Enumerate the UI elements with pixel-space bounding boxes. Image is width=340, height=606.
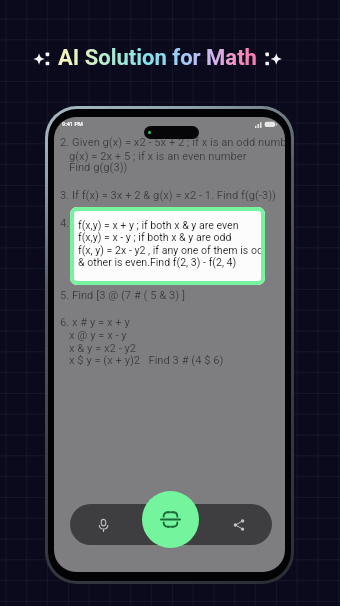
staticText: 9:41 PM <box>62 121 83 127</box>
staticText: f(x, y) = 2x - y2 , if any one of them i… <box>78 244 265 256</box>
staticText: x & y = x2 - y2 <box>69 342 137 355</box>
staticText: 6. x # y = x + y <box>60 316 130 329</box>
staticText: 4. <box>60 217 70 230</box>
staticText: x $ y = (x + y)2 Find 3 # (4 $ 6) <box>69 354 224 367</box>
staticText: f(x,y) = x - y ; if both x & y are odd <box>78 231 232 243</box>
staticText: AI Solution for Math <box>58 45 257 71</box>
staticText: x @ y = x - y <box>69 329 127 342</box>
staticText: f(x,y) = x + y ; if both x & y are even <box>78 219 239 231</box>
staticText: g(x) = 2x + 5 ; if x is an even number <box>69 150 247 163</box>
button[interactable]: Share <box>222 508 256 542</box>
staticText: Find g(g(3)) <box>69 161 128 174</box>
button[interactable]: Voice input <box>86 508 120 542</box>
button[interactable]: Scan problem <box>142 491 199 548</box>
staticText: 5. Find [3 @ (7 # ( 5 & 3) ] <box>60 289 185 302</box>
staticText: 3. If f(x) = 3x + 2 & g(x) = x2 - 1. Fin… <box>60 189 277 202</box>
staticText: 2. Given g(x) = x2 - 5x + 2 ; if x is an… <box>60 136 285 149</box>
staticText: & other is even.Find f(2, 3) - f(2, 4) <box>78 256 237 268</box>
